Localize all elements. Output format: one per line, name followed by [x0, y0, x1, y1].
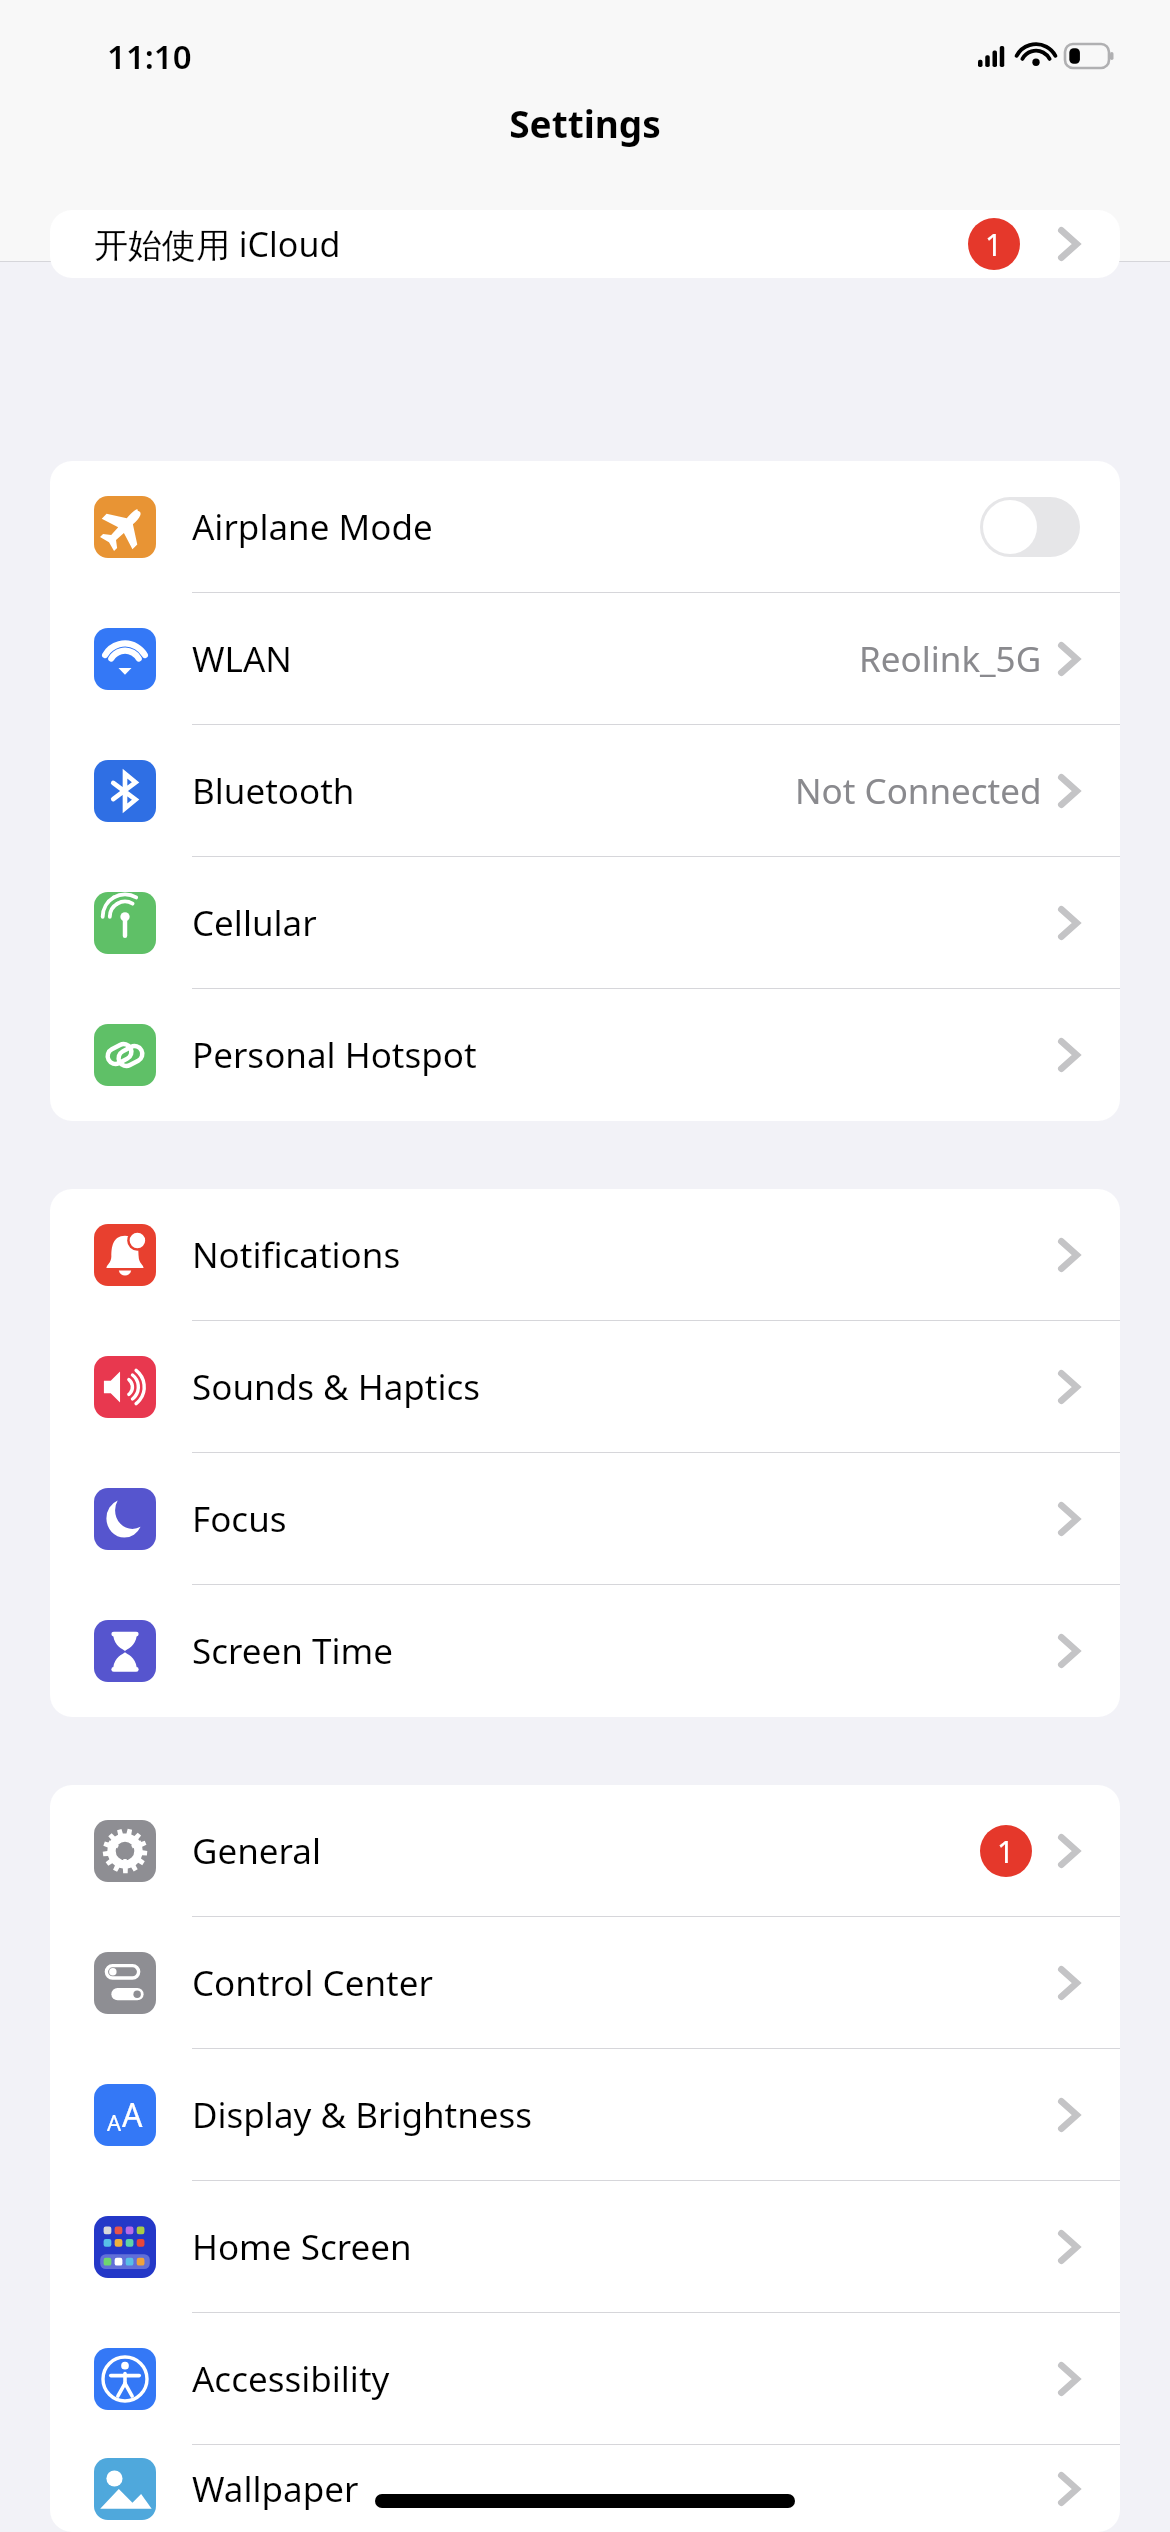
staticText: Cellular [192, 899, 317, 947]
staticText: Sounds & Haptics [192, 1363, 481, 1411]
button[interactable]: Personal Hotspot [50, 989, 1120, 1121]
button[interactable]: Bluetooth [50, 725, 1120, 857]
staticText: 1 [985, 224, 1003, 265]
staticText: Reolink_5G [859, 635, 1042, 683]
staticText: Display & Brightness [192, 2091, 533, 2139]
staticText: Settings [509, 98, 661, 148]
button[interactable]: Home Screen [50, 2181, 1120, 2313]
button[interactable]: Airplane Mode toggle [980, 497, 1080, 557]
button[interactable]: Airplane Mode [50, 461, 1120, 593]
staticText: Airplane Mode [192, 503, 433, 551]
button[interactable]: WLAN [50, 593, 1120, 725]
staticText: 1 [997, 1831, 1015, 1872]
staticText: A [107, 2107, 122, 2137]
staticText: Notifications [192, 1231, 401, 1279]
staticText: 开始使用 iCloud [94, 221, 341, 267]
button[interactable]: General [50, 1785, 1120, 1917]
button[interactable]: Cellular [50, 857, 1120, 989]
staticText: 11:10 [107, 34, 192, 79]
button[interactable]: Sounds & Haptics [50, 1321, 1120, 1453]
button[interactable]: Control Center [50, 1917, 1120, 2049]
staticText: General [192, 1827, 322, 1875]
staticText: Accessibility [192, 2355, 390, 2403]
staticText: Home Screen [192, 2223, 412, 2271]
staticText: Wallpaper [192, 2465, 359, 2513]
staticText: Control Center [192, 1959, 433, 2007]
staticText: Personal Hotspot [192, 1031, 477, 1079]
staticText: A [122, 2093, 143, 2137]
staticText: Not Connected [795, 767, 1042, 815]
staticText: Focus [192, 1495, 287, 1543]
staticText: WLAN [192, 635, 292, 683]
button[interactable]: 开始使用 iCloud [50, 210, 1120, 278]
button[interactable]: Notifications [50, 1189, 1120, 1321]
staticText: Screen Time [192, 1627, 393, 1675]
button[interactable]: Accessibility [50, 2313, 1120, 2445]
staticText: Bluetooth [192, 767, 355, 815]
button[interactable]: Screen Time [50, 1585, 1120, 1717]
button[interactable]: A [50, 2049, 1120, 2181]
button[interactable]: Focus [50, 1453, 1120, 1585]
button[interactable]: Wallpaper [50, 2445, 1120, 2532]
